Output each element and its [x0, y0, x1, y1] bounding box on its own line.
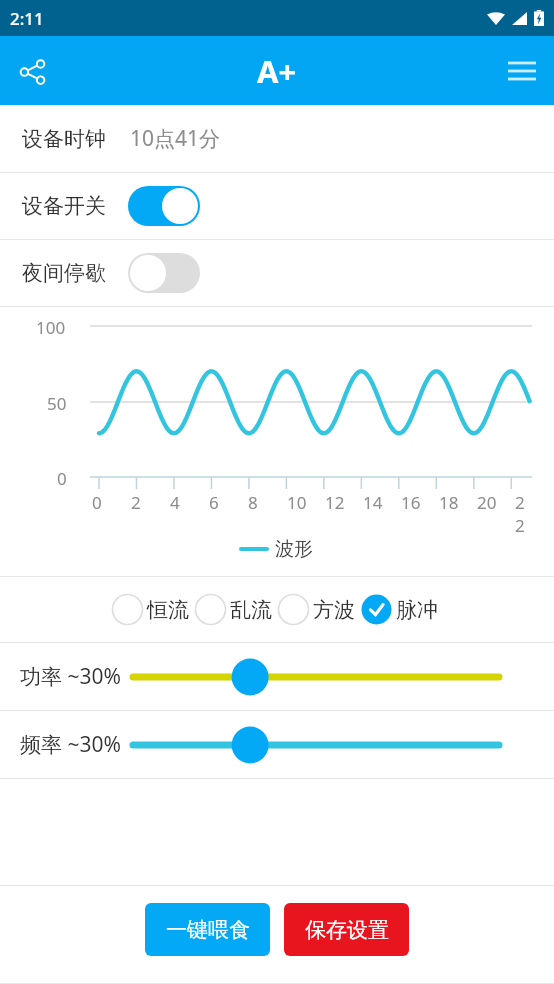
staticText: 设备时钟: [22, 126, 106, 152]
button[interactable]: 设备时钟: [0, 105, 554, 172]
staticText: 方波: [313, 597, 355, 623]
button[interactable]: Share: [6, 45, 58, 97]
staticText: 10: [287, 491, 307, 514]
staticText: 保存设置: [305, 917, 389, 943]
staticText: 4: [170, 491, 180, 514]
staticText: 16: [401, 491, 421, 514]
button[interactable]: 设备开关: [128, 186, 200, 226]
staticText: 夜间停歇: [22, 260, 106, 286]
staticText: 14: [363, 491, 383, 514]
button[interactable]: 保存设置: [284, 903, 409, 956]
staticText: 乱流: [230, 597, 272, 623]
staticText: 50: [47, 392, 67, 415]
staticText: 一键喂食: [166, 917, 250, 943]
staticText: A+: [257, 50, 297, 92]
staticText: 频率 ~30%: [20, 730, 121, 759]
staticText: 6: [209, 491, 219, 514]
staticText: 脉冲: [396, 597, 438, 623]
staticText: 2:11: [10, 7, 44, 30]
staticText: 12: [325, 491, 345, 514]
button[interactable]: 夜间停歇: [0, 240, 554, 306]
button[interactable]: 恒流: [111, 593, 194, 626]
button[interactable]: 脉冲: [360, 593, 443, 626]
staticText: 2: [131, 491, 141, 514]
staticText: 功率 ~30%: [20, 662, 121, 691]
staticText: 18: [439, 491, 459, 514]
staticText: 0: [57, 467, 67, 490]
button[interactable]: 设备开关: [0, 173, 554, 239]
staticText: 波形: [275, 537, 313, 561]
staticText: 22: [515, 491, 534, 537]
button[interactable]: 功率 ~30%: [133, 652, 499, 702]
staticText: 0: [92, 491, 102, 514]
button[interactable]: 夜间停歇: [128, 253, 200, 293]
staticText: 10点41分: [130, 124, 221, 153]
staticText: 设备开关: [22, 193, 106, 219]
staticText: 100: [36, 316, 66, 339]
staticText: 8: [248, 491, 258, 514]
button[interactable]: 一键喂食: [145, 903, 270, 956]
button[interactable]: 方波: [277, 593, 360, 626]
button[interactable]: 乱流: [194, 593, 277, 626]
staticText: 20: [477, 491, 497, 514]
button[interactable]: 频率 ~30%: [133, 720, 499, 770]
staticText: 恒流: [147, 597, 189, 623]
button[interactable]: Menu: [496, 45, 548, 97]
